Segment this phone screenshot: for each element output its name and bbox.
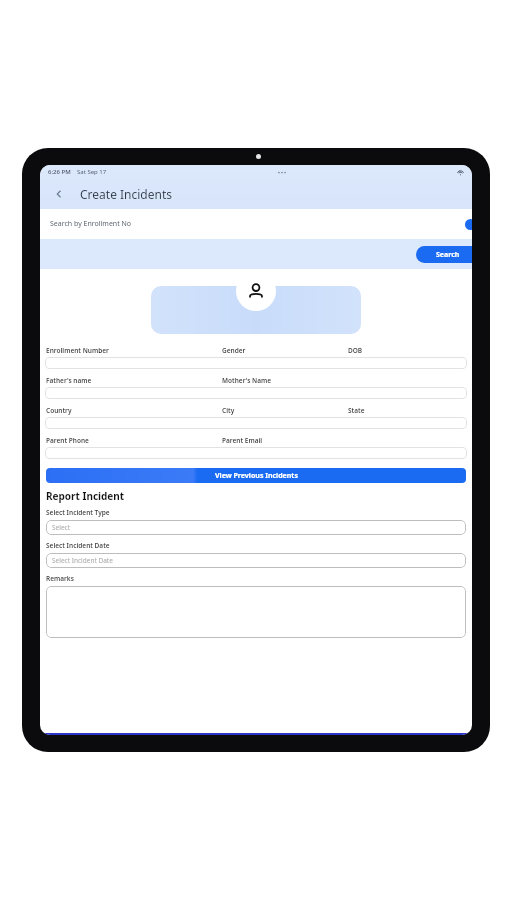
staticText: Enrollment Number: [46, 346, 109, 355]
button[interactable]: [45, 357, 467, 369]
staticText: City: [222, 406, 235, 415]
staticText: Report Incident: [46, 489, 125, 503]
staticText: Search by Enrollment No: [50, 219, 132, 229]
button[interactable]: Scan: [465, 219, 472, 230]
staticText: Father's name: [46, 376, 92, 385]
button[interactable]: [45, 387, 467, 399]
button[interactable]: Back: [48, 183, 70, 205]
staticText: Country: [46, 406, 72, 415]
staticText: 6:26 PM: [48, 168, 71, 176]
staticText: Create Incidents: [80, 186, 173, 202]
button[interactable]: Search: [416, 246, 472, 263]
staticText: DOB: [348, 346, 363, 355]
button[interactable]: Select: [46, 520, 466, 535]
button[interactable]: [46, 586, 466, 638]
staticText: Parent Phone: [46, 436, 89, 445]
staticText: Gender: [222, 346, 246, 355]
staticText: Remarks: [46, 574, 74, 583]
staticText: Select Incident Date: [46, 541, 110, 550]
staticText: Select: [52, 523, 71, 532]
staticText: State: [348, 406, 365, 415]
button[interactable]: Select Incident Date: [46, 553, 466, 568]
staticText: Mother's Name: [222, 376, 272, 385]
staticText: Select Incident Date: [52, 556, 113, 565]
staticText: View Previous Incidents: [215, 471, 298, 481]
button[interactable]: [45, 417, 467, 429]
staticText: Select Incident Type: [46, 508, 110, 517]
button[interactable]: [45, 447, 467, 459]
staticText: Parent Email: [222, 436, 263, 445]
staticText: Sat Sep 17: [77, 168, 107, 176]
button[interactable]: View Previous Incidents: [46, 468, 466, 483]
button[interactable]: Search by Enrollment No: [50, 213, 462, 235]
staticText: Search: [436, 250, 460, 260]
